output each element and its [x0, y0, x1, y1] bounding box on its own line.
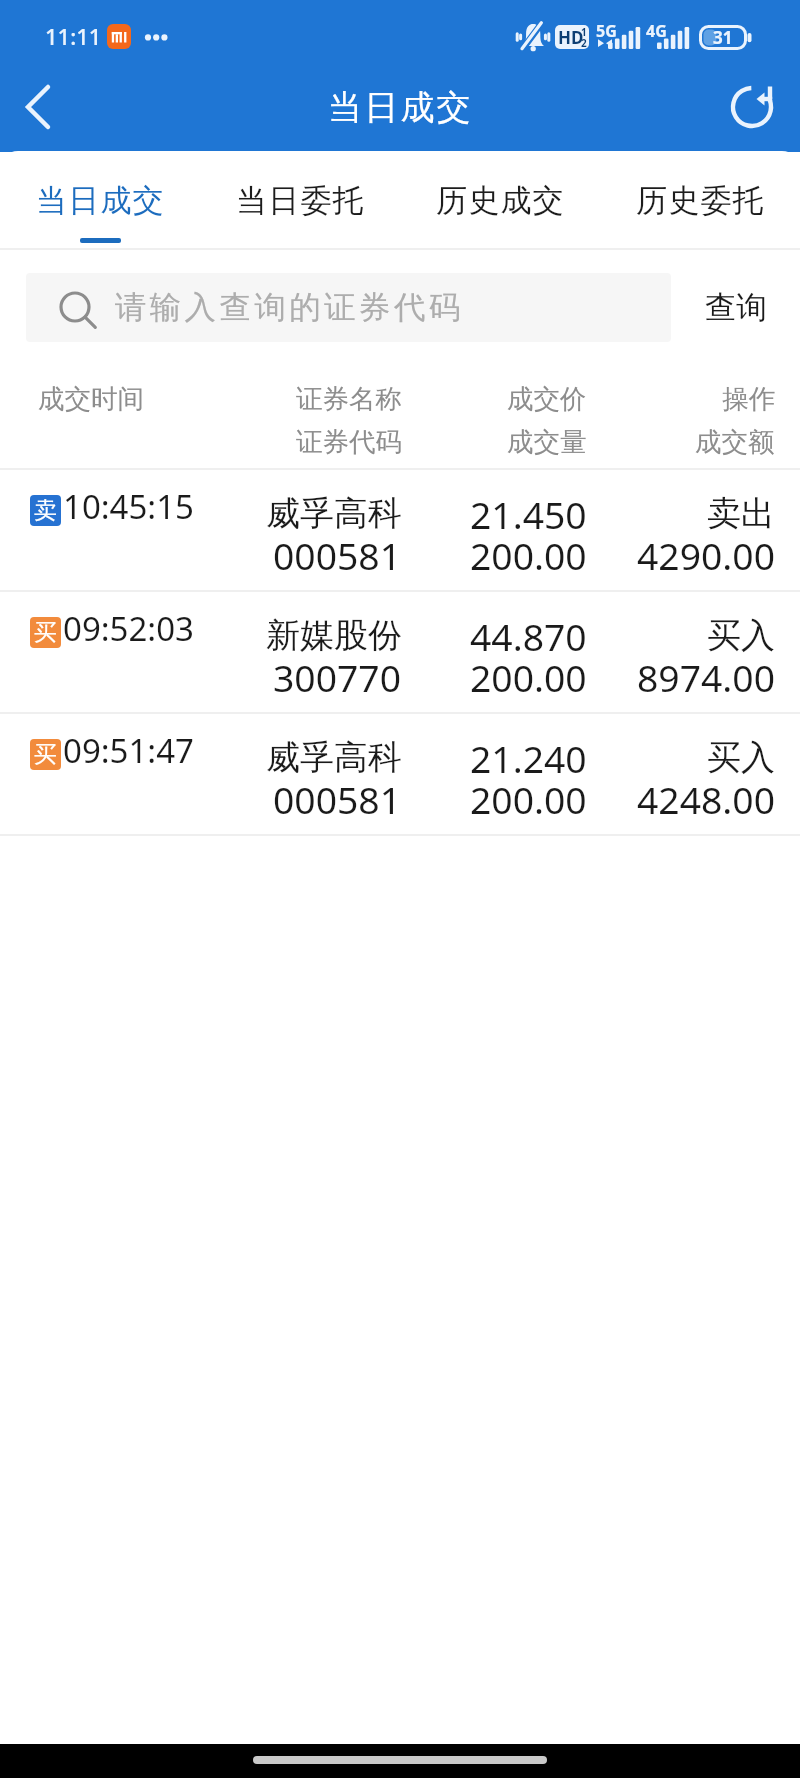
staticText: 4G	[646, 20, 667, 42]
button[interactable]: 卖	[0, 470, 800, 590]
staticText: 31	[713, 26, 733, 49]
button[interactable]: 当日成交	[0, 151, 200, 248]
staticText: 4290.00	[637, 530, 775, 581]
staticText: 历史委托	[636, 181, 765, 220]
button[interactable]: 历史成交	[400, 151, 600, 248]
button[interactable]: 查询	[671, 273, 800, 342]
button[interactable]: 当日委托	[200, 151, 400, 248]
staticText: 000581	[273, 774, 402, 825]
staticText: 威孚高科	[266, 492, 402, 535]
staticText: 4248.00	[637, 774, 775, 825]
staticText: 买入	[707, 614, 775, 657]
button[interactable]: 买	[0, 714, 800, 834]
staticText: 09:52:03	[63, 606, 194, 651]
staticText: 卖出	[707, 492, 775, 535]
staticText: 威孚高科	[266, 736, 402, 779]
staticText: 成交量	[507, 425, 587, 458]
staticText: 成交价	[507, 382, 587, 415]
staticText: 成交时间	[38, 382, 144, 415]
staticText: 买	[34, 740, 57, 769]
staticText: 300770	[273, 652, 402, 703]
button[interactable]: Search securities code	[26, 273, 671, 342]
staticText: 卖	[34, 496, 57, 525]
staticText: 21.450	[470, 489, 587, 540]
staticText: 200.00	[470, 652, 587, 703]
staticText: 查询	[705, 288, 767, 327]
staticText: 10:45:15	[63, 484, 194, 529]
staticText: 21.240	[470, 733, 587, 784]
staticText: 当日成交	[328, 86, 473, 129]
staticText: 000581	[273, 530, 402, 581]
button[interactable]: 买	[0, 592, 800, 712]
staticText: HD	[558, 26, 584, 49]
staticText: 200.00	[470, 774, 587, 825]
button[interactable]: Back	[0, 62, 76, 152]
staticText: 09:51:47	[63, 728, 194, 773]
button[interactable]: 历史委托	[600, 151, 800, 248]
staticText: 200.00	[470, 530, 587, 581]
staticText: 证券代码	[296, 425, 402, 458]
staticText: 11:11	[45, 21, 102, 51]
staticText: 证券名称	[296, 382, 402, 415]
staticText: 44.870	[470, 611, 587, 662]
staticText: 新媒股份	[266, 614, 402, 657]
staticText: 1	[581, 25, 587, 39]
staticText: 买入	[707, 736, 775, 779]
staticText: 操作	[722, 382, 775, 415]
staticText: 当日委托	[236, 181, 365, 220]
staticText: 请输入查询的证券代码	[113, 288, 462, 328]
staticText: 8974.00	[637, 652, 775, 703]
staticText: 成交额	[695, 425, 775, 458]
staticText: 2	[581, 36, 587, 49]
staticText: 5G	[596, 20, 617, 42]
staticText: 买	[34, 618, 57, 647]
button[interactable]: Refresh	[704, 62, 800, 152]
staticText: 历史成交	[436, 181, 565, 220]
staticText: 当日成交	[36, 181, 165, 220]
